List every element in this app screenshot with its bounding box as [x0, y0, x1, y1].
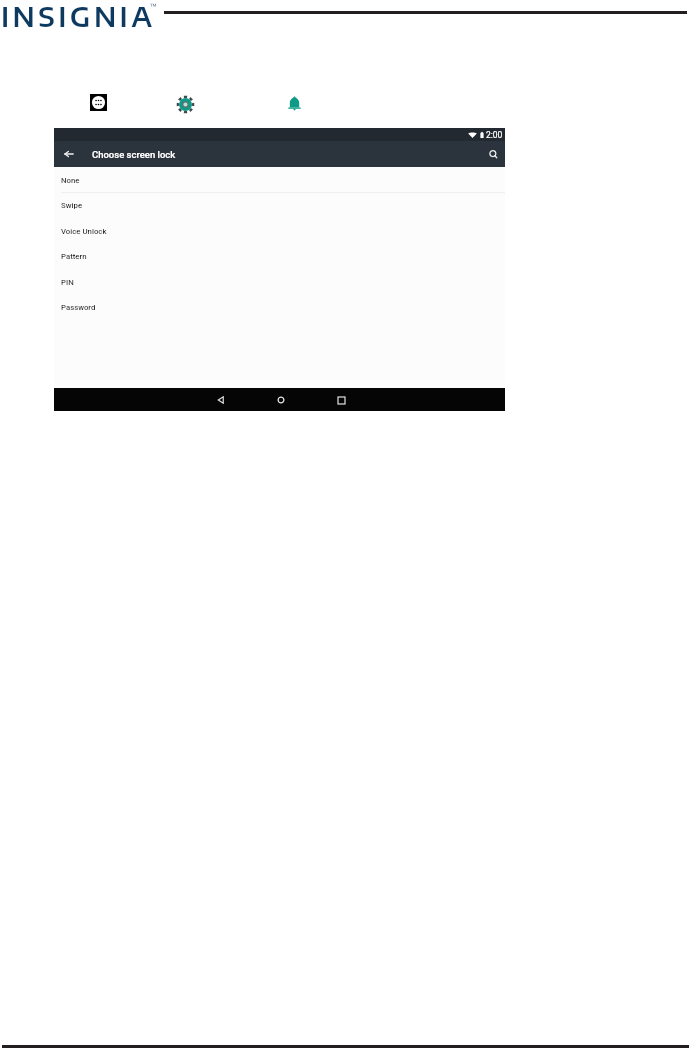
staticText: None [61, 176, 80, 185]
staticText: Pattern [61, 252, 87, 261]
button[interactable]: Swipe [54, 193, 505, 218]
button[interactable]: All apps [90, 94, 107, 111]
button[interactable]: Notifications [286, 95, 303, 112]
button[interactable]: None [54, 168, 505, 193]
button[interactable]: Home [272, 391, 290, 409]
button[interactable]: Settings [176, 95, 195, 114]
staticText: Voice Unlock [61, 227, 107, 236]
staticText: 2:00 [486, 130, 503, 140]
staticText: Swipe [61, 201, 83, 210]
staticText: ™ [150, 2, 157, 9]
button[interactable]: Recent apps [332, 391, 350, 409]
button[interactable]: Voice Unlock [54, 219, 505, 244]
button[interactable]: Pattern [54, 244, 505, 269]
button[interactable]: Search [488, 149, 499, 160]
staticText: Password [61, 303, 96, 312]
staticText: INSIGNIA [1, 0, 156, 32]
staticText: Choose screen lock [92, 149, 176, 160]
button[interactable]: Password [54, 295, 505, 320]
staticText: PIN [61, 278, 74, 287]
button[interactable]: PIN [54, 270, 505, 295]
button[interactable]: Back [212, 391, 230, 409]
button[interactable]: Back [61, 146, 77, 162]
